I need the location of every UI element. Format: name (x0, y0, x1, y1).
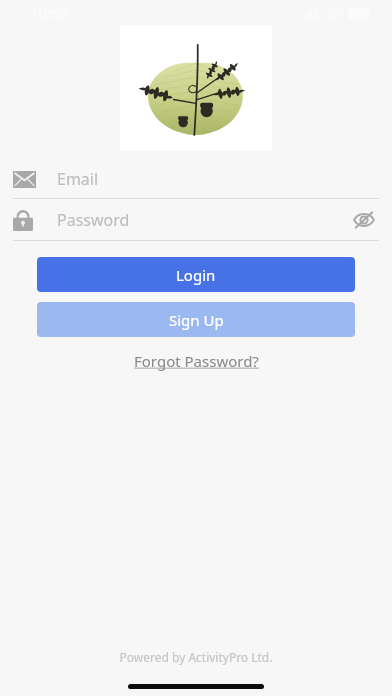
button[interactable]: Password (0, 199, 392, 240)
staticText: Forgot Password? (134, 351, 259, 371)
staticText: Email (57, 168, 99, 190)
staticText: Password (57, 209, 349, 231)
button[interactable]: Email (0, 160, 392, 198)
staticText: Sign Up (169, 310, 224, 330)
button[interactable]: Show password (349, 205, 379, 235)
button[interactable]: Login (37, 257, 355, 292)
staticText: Powered by ActivityPro Ltd. (0, 649, 392, 665)
button[interactable]: Sign Up (37, 302, 355, 337)
button[interactable]: Forgot Password? (126, 348, 267, 374)
staticText: Login (176, 265, 216, 285)
